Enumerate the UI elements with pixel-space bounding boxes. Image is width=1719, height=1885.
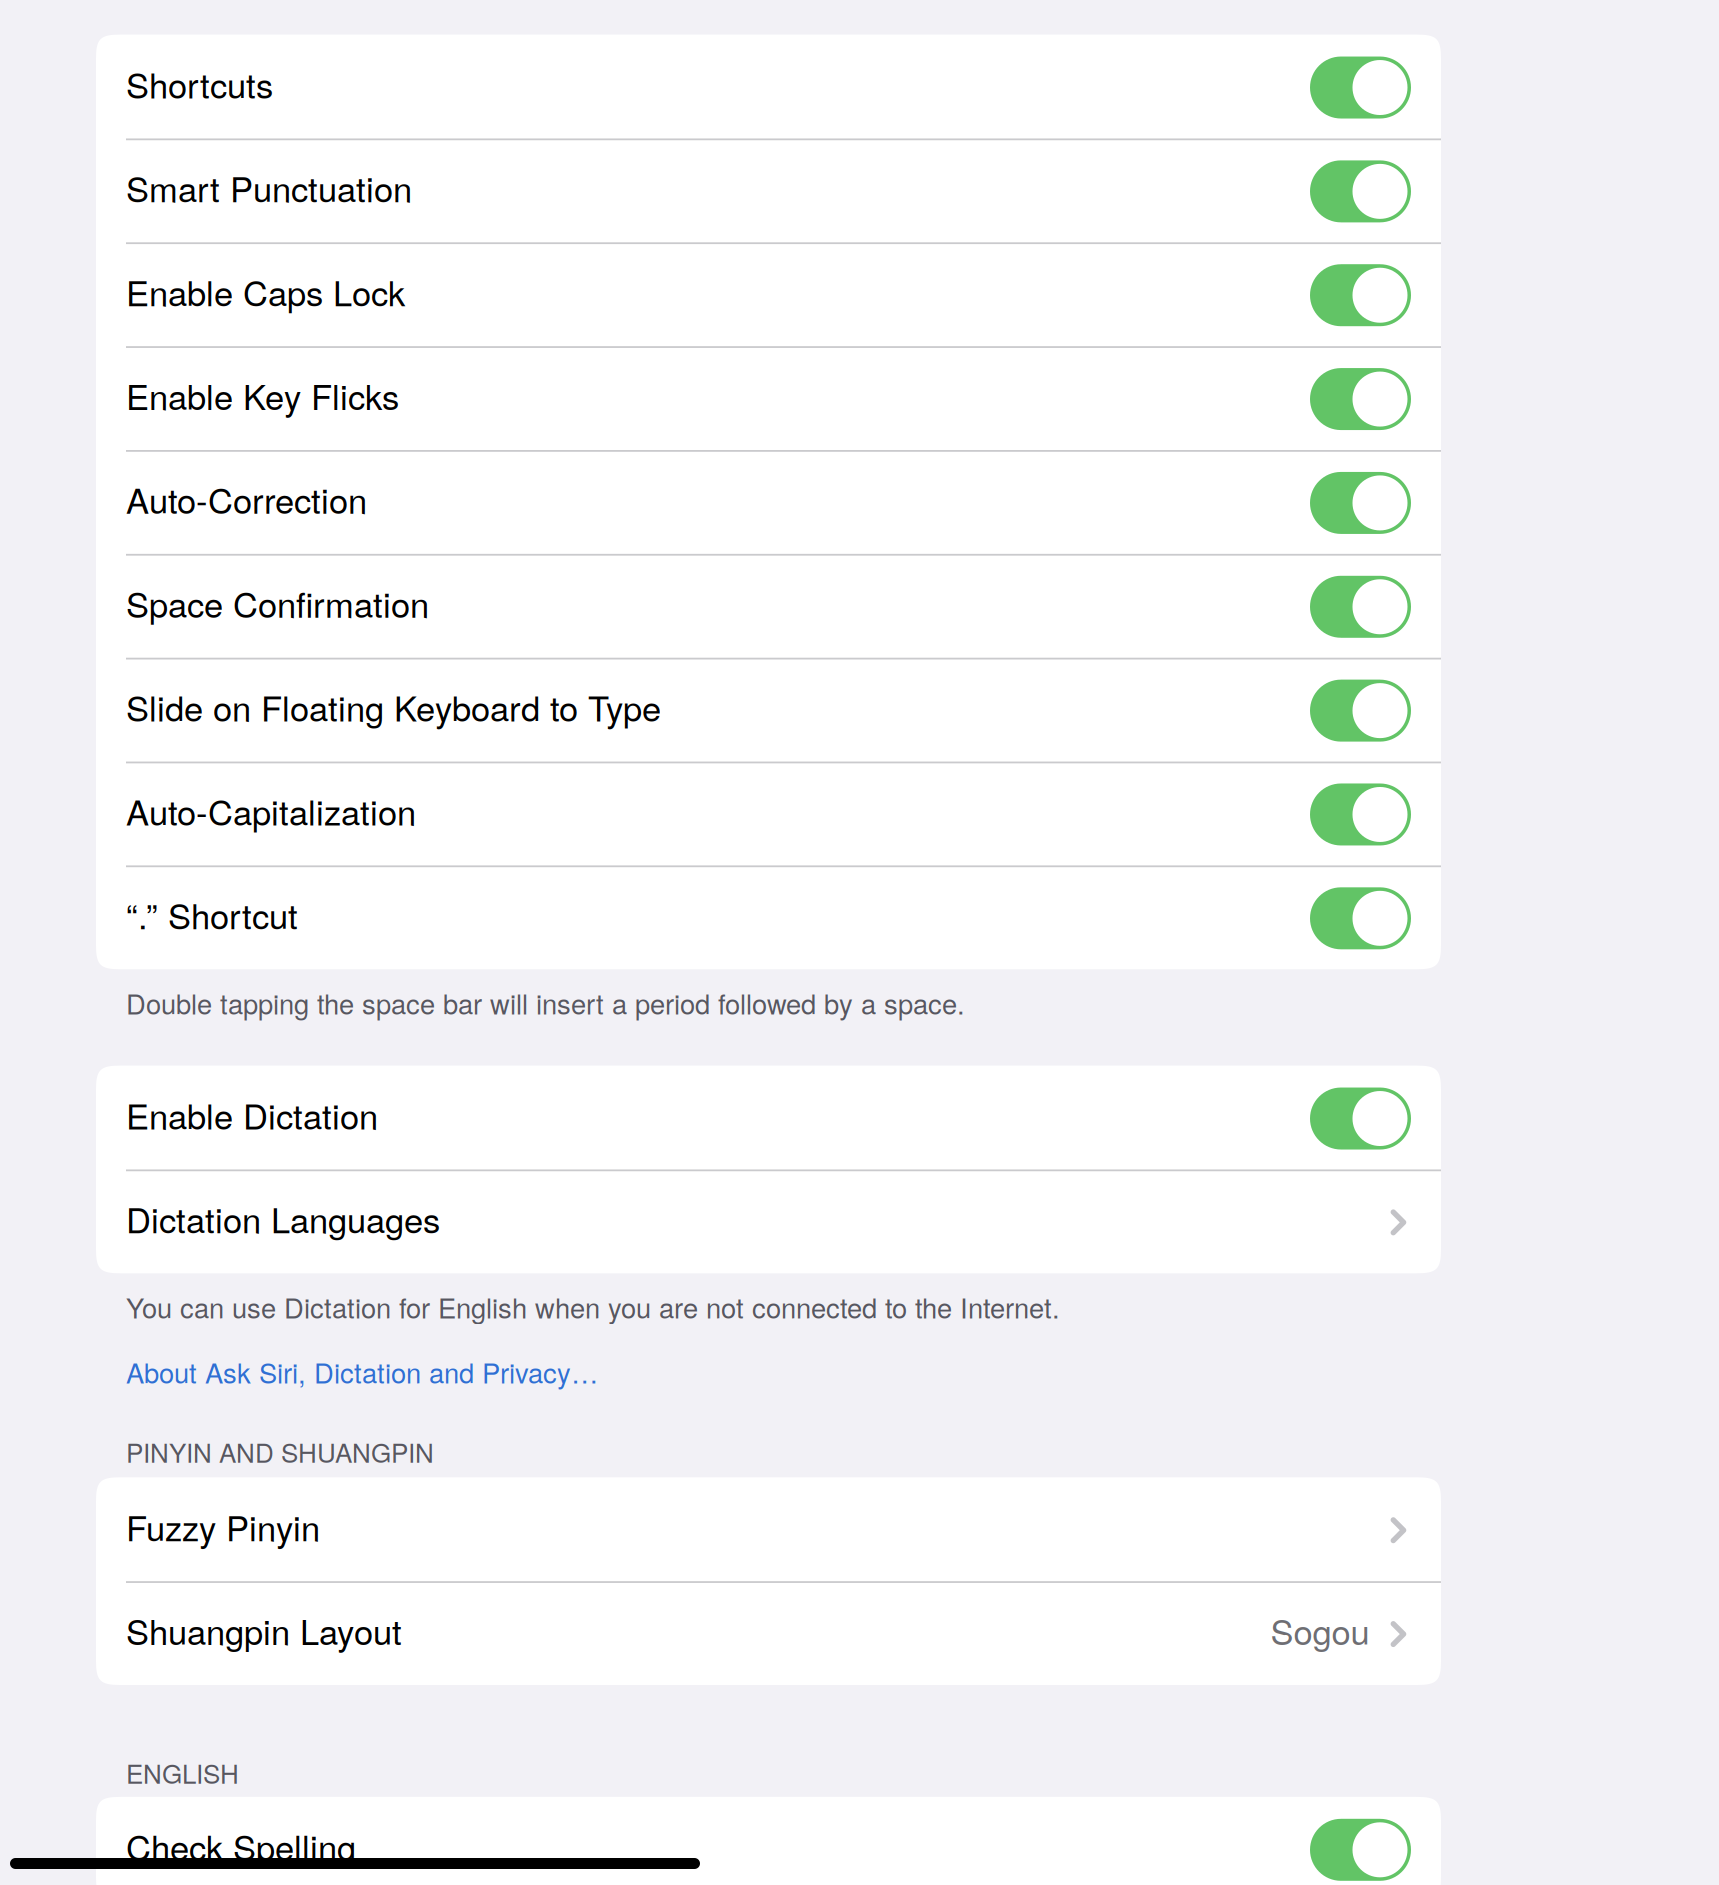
button[interactable]: Enable Dictation xyxy=(96,1066,1441,1169)
staticText: Fuzzy Pinyin xyxy=(126,1501,320,1551)
staticText: Shuangpin Layout xyxy=(126,1605,402,1655)
button[interactable]: Auto-Capitalization xyxy=(96,762,1441,865)
button[interactable]: Check Spelling xyxy=(96,1797,1441,1885)
button[interactable]: Auto-Correction xyxy=(96,450,1441,554)
staticText: Shortcuts xyxy=(126,59,273,108)
staticText: Auto-Capitalization xyxy=(126,786,416,835)
staticText: Sogou xyxy=(1270,1605,1369,1655)
staticText: Enable Dictation xyxy=(126,1090,378,1139)
button[interactable]: Fuzzy Pinyin xyxy=(96,1477,1441,1581)
staticText: Smart Punctuation xyxy=(126,163,412,212)
staticText: Auto-Correction xyxy=(126,474,367,524)
button[interactable]: Smart Punctuation xyxy=(96,138,1441,242)
staticText: Slide on Floating Keyboard to Type xyxy=(126,682,661,731)
button[interactable]: Shortcuts xyxy=(96,35,1441,138)
button[interactable]: “.” Shortcut xyxy=(96,865,1441,969)
staticText: Enable Key Flicks xyxy=(126,370,399,420)
button[interactable]: Enable Key Flicks xyxy=(96,346,1441,450)
staticText: Dictation Languages xyxy=(126,1194,440,1243)
staticText: PINYIN AND SHUANGPIN xyxy=(126,1433,434,1470)
button[interactable]: Slide on Floating Keyboard to Type xyxy=(96,658,1441,761)
button[interactable]: About Ask Siri, Dictation and Privacy… xyxy=(126,1352,598,1391)
button[interactable]: Enable Caps Lock xyxy=(96,242,1441,346)
staticText: Double tapping the space bar will insert… xyxy=(126,983,965,1022)
staticText: Space Confirmation xyxy=(126,578,429,627)
staticText: You can use Dictation for English when y… xyxy=(126,1287,1060,1326)
button[interactable]: Space Confirmation xyxy=(96,554,1441,658)
staticText: “.” Shortcut xyxy=(126,890,298,939)
button[interactable]: Dictation Languages xyxy=(96,1169,1441,1273)
staticText: About Ask Siri, Dictation and Privacy… xyxy=(126,1352,598,1391)
staticText: Check Spelling xyxy=(126,1821,356,1871)
button[interactable]: Shuangpin Layout xyxy=(96,1581,1441,1685)
staticText: ENGLISH xyxy=(126,1754,239,1791)
staticText: Enable Caps Lock xyxy=(126,266,405,316)
